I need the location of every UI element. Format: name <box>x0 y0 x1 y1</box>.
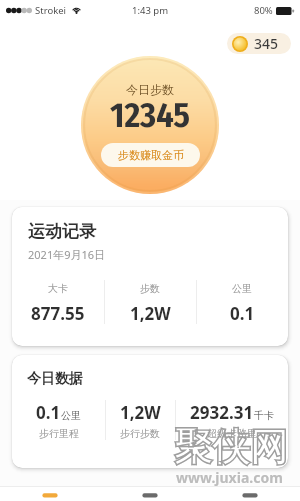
staticText: 2932.31 <box>190 401 254 424</box>
staticText: 0.1 <box>230 302 255 325</box>
staticText: 今日步数 <box>126 82 174 97</box>
staticText: www.juxia.com <box>176 468 283 487</box>
staticText: 聚侠网 <box>174 423 288 471</box>
staticText: 0.1 <box>36 401 61 424</box>
button[interactable]: Mine <box>200 487 300 501</box>
staticText: 超级卡路里 <box>207 427 257 440</box>
button[interactable]: 今日数据 <box>12 355 288 468</box>
button[interactable]: 345 <box>227 33 291 54</box>
staticText: 345 <box>254 34 279 53</box>
staticText: 今日数据 <box>27 370 83 388</box>
staticText: 运动记录 <box>28 221 96 242</box>
button[interactable]: 步数赚取金币 <box>101 143 200 167</box>
staticText: 大卡 <box>48 282 68 295</box>
staticText: 步行步数 <box>120 427 160 440</box>
button[interactable]: Records <box>100 487 200 501</box>
staticText: 步数赚取金币 <box>118 148 184 162</box>
staticText: 80% <box>254 4 273 17</box>
staticText: 公里 <box>232 282 252 295</box>
staticText: 1,2W <box>120 401 161 424</box>
staticText: 1,2W <box>130 302 171 325</box>
staticText: 877.55 <box>31 302 85 325</box>
staticText: 步数 <box>140 282 160 295</box>
staticText: 1:43 pm <box>132 4 169 17</box>
staticText: 步行里程 <box>39 427 79 440</box>
button[interactable]: Steps <box>0 487 100 501</box>
staticText: 2021年9月16日 <box>28 247 106 262</box>
staticText: 12345 <box>110 95 190 136</box>
staticText: 公里 <box>61 409 81 422</box>
button[interactable]: 运动记录 <box>12 207 288 346</box>
staticText: 千卡 <box>254 409 274 422</box>
staticText: Strokei <box>35 4 67 17</box>
